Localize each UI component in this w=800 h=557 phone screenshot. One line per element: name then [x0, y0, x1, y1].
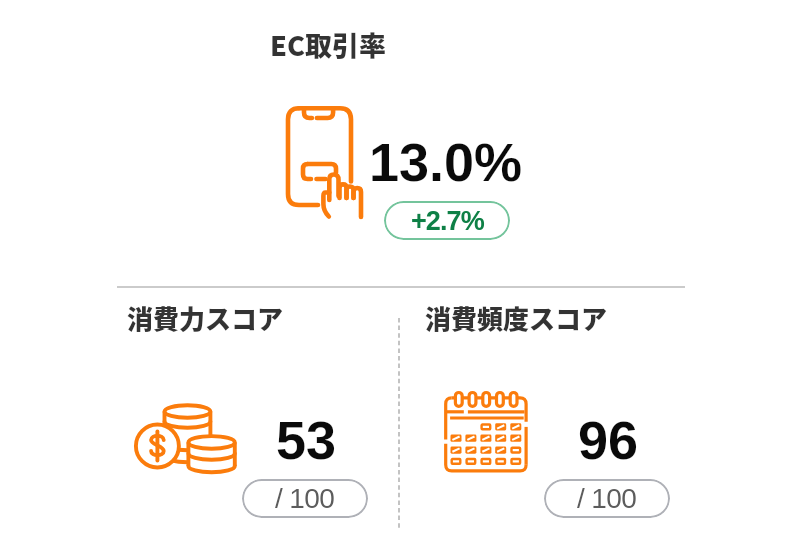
other: Spending power — [134, 400, 238, 478]
staticText: 53 — [276, 410, 337, 470]
staticText: / 100 — [577, 483, 637, 514]
other: EC transaction — [284, 104, 368, 226]
button[interactable]: / 100 — [544, 479, 670, 518]
button[interactable]: +2.7% — [384, 201, 510, 240]
staticText: EC取引率 — [270, 25, 387, 64]
staticText: 13.0% — [369, 132, 523, 192]
staticText: +2.7% — [411, 206, 484, 236]
other: Spending frequency — [444, 391, 530, 475]
staticText: 消費力スコア — [127, 299, 284, 337]
staticText: 96 — [578, 410, 639, 470]
staticText: 消費頻度スコア — [425, 299, 608, 337]
staticText: / 100 — [275, 483, 335, 514]
button[interactable]: / 100 — [242, 479, 368, 518]
